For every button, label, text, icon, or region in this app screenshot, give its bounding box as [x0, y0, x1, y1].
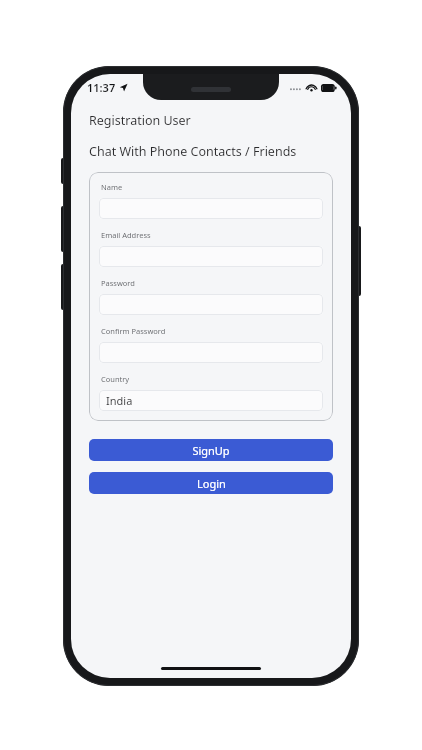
- button[interactable]: [99, 198, 323, 219]
- staticText: Password: [101, 278, 135, 288]
- button[interactable]: India: [99, 390, 323, 411]
- button[interactable]: SignUp: [89, 439, 333, 461]
- button[interactable]: Login: [89, 472, 333, 494]
- staticText: Country: [101, 374, 130, 384]
- staticText: Confirm Password: [101, 326, 166, 336]
- staticText: Login: [197, 476, 226, 491]
- staticText: Chat With Phone Contacts / Friends: [89, 143, 297, 160]
- staticText: Name: [101, 182, 123, 192]
- staticText: India: [106, 393, 133, 408]
- staticText: 11:37: [87, 80, 116, 95]
- button[interactable]: [99, 294, 323, 315]
- staticText: SignUp: [192, 443, 230, 458]
- button[interactable]: [99, 246, 323, 267]
- staticText: Email Address: [101, 230, 151, 240]
- button[interactable]: [99, 342, 323, 363]
- staticText: Registration User: [89, 112, 191, 129]
